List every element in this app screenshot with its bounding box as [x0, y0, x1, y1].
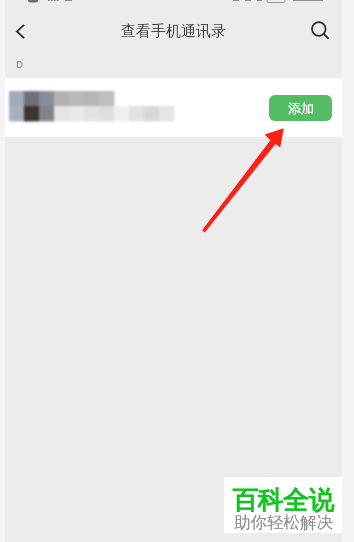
staticText: D [16, 58, 23, 71]
staticText: 添加 [288, 100, 314, 116]
button[interactable]: 添加 [5, 78, 342, 137]
button[interactable]: 添加 [269, 95, 332, 121]
staticText: 助你轻松解决 [234, 512, 333, 533]
staticText: 百科全说 [232, 484, 334, 516]
button[interactable]: Search [298, 9, 342, 53]
staticText: 查看手机通讯录 [121, 22, 226, 41]
button[interactable]: Back [5, 11, 45, 51]
